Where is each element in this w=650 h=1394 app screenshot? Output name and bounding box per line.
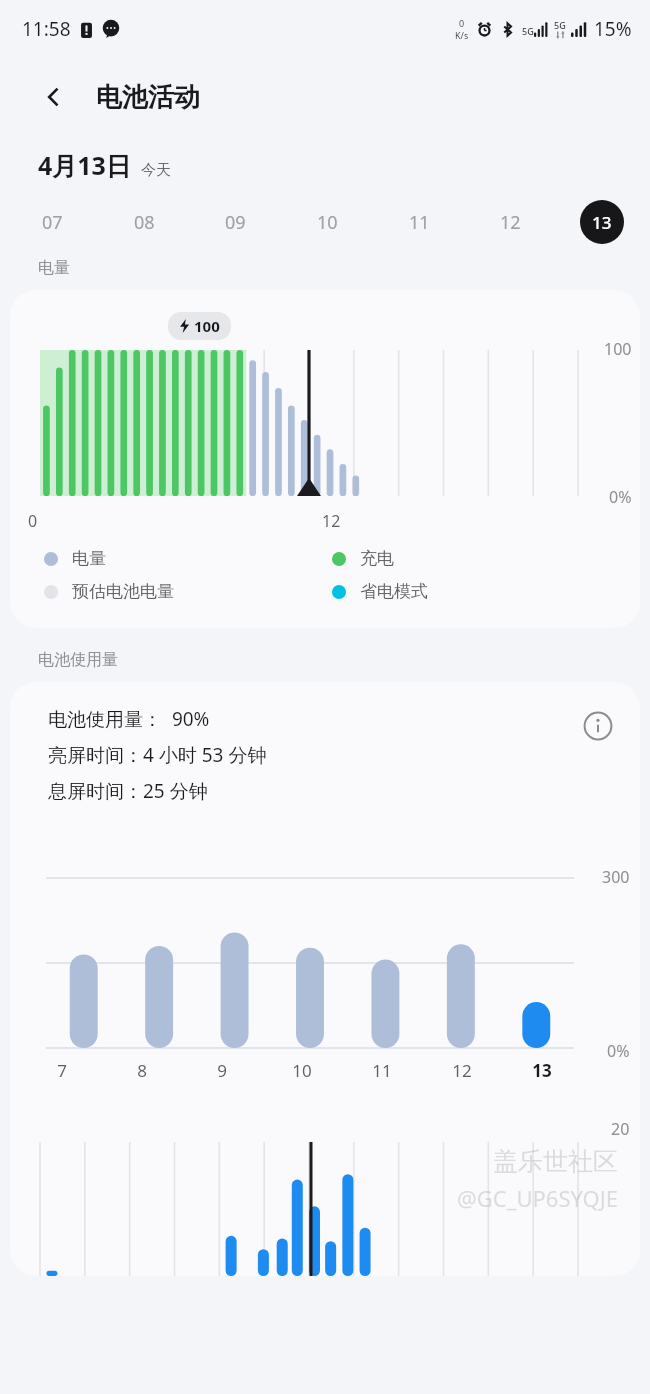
staticText: 15%: [594, 16, 632, 42]
staticText: 11: [409, 210, 430, 235]
button[interactable]: Information: [578, 706, 618, 746]
staticText: 充电: [360, 548, 394, 569]
button[interactable]: 07: [30, 200, 74, 244]
staticText: @GC_UP6SYQJE: [457, 1183, 618, 1213]
staticText: 0: [459, 17, 465, 29]
staticText: K/s: [455, 29, 469, 41]
button[interactable]: 12: [488, 200, 532, 244]
button[interactable]: 11: [397, 200, 441, 244]
button[interactable]: 10: [305, 200, 349, 244]
staticText: 电池活动: [96, 81, 200, 114]
staticText: 12: [500, 210, 521, 235]
staticText: 08: [134, 210, 155, 235]
staticText: 省电模式: [360, 581, 428, 602]
staticText: 电量: [38, 258, 70, 278]
staticText: 7: [57, 1059, 67, 1082]
staticText: 09: [225, 210, 246, 235]
staticText: 10: [317, 210, 338, 235]
button[interactable]: 100: [10, 290, 640, 628]
staticText: 8: [137, 1059, 147, 1082]
staticText: 11: [372, 1059, 392, 1082]
staticText: 预估电池电量: [72, 581, 174, 602]
staticText: 0%: [607, 1040, 630, 1062]
staticText: 100: [604, 338, 632, 360]
staticText: 盖乐世社区: [493, 1146, 618, 1177]
button[interactable]: 09: [213, 200, 257, 244]
staticText: 电池使用量: [38, 650, 118, 670]
staticText: 电量: [72, 548, 106, 569]
staticText: 电池使用量： 90%: [48, 706, 210, 732]
staticText: 12: [322, 510, 341, 532]
button[interactable]: 13: [580, 200, 624, 244]
staticText: 10: [292, 1059, 312, 1082]
staticText: 11:58: [22, 16, 71, 42]
staticText: 100: [194, 316, 220, 336]
staticText: 0%: [609, 486, 632, 508]
staticText: 13: [532, 1059, 552, 1082]
staticText: 9: [217, 1059, 227, 1082]
staticText: 5G: [522, 25, 534, 37]
staticText: 07: [42, 210, 63, 235]
staticText: 20: [611, 1118, 630, 1140]
button[interactable]: 电池使用量： 90%: [10, 682, 640, 1276]
staticText: 4月13日: [38, 148, 131, 182]
button[interactable]: 08: [122, 200, 166, 244]
staticText: 5G: [554, 19, 566, 31]
staticText: 息屏时间：25 分钟: [48, 778, 208, 804]
staticText: 今天: [141, 161, 171, 180]
button[interactable]: Back: [34, 77, 74, 117]
staticText: 0: [28, 510, 38, 532]
staticText: 300: [602, 866, 630, 888]
staticText: 13: [592, 211, 612, 234]
staticText: 亮屏时间：4 小时 53 分钟: [48, 742, 267, 768]
staticText: 12: [452, 1059, 472, 1082]
